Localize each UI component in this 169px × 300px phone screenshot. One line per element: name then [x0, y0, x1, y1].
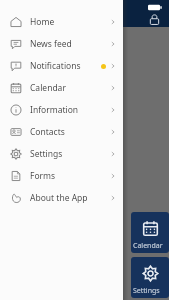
button[interactable]: Lock: [148, 13, 161, 26]
button[interactable]: Settings: [0, 143, 123, 165]
staticText: Settings: [30, 148, 63, 160]
staticText: Contacts: [30, 126, 65, 138]
staticText: About the App: [30, 192, 88, 204]
button[interactable]: Home: [0, 11, 123, 33]
button[interactable]: News feed: [0, 33, 123, 55]
button[interactable]: Calendar: [0, 77, 123, 99]
staticText: Home: [30, 16, 55, 28]
staticText: Information: [30, 104, 79, 116]
button[interactable]: Notifications: [0, 55, 123, 77]
button[interactable]: Forms: [0, 165, 123, 187]
staticText: Calendar: [133, 241, 163, 251]
staticText: Calendar: [30, 82, 66, 94]
button[interactable]: About the App: [0, 187, 123, 209]
staticText: News feed: [30, 38, 72, 50]
button[interactable]: Information: [0, 99, 123, 121]
button[interactable]: Calendar: [131, 212, 169, 253]
staticText: Forms: [30, 170, 56, 182]
button[interactable]: Settings: [131, 257, 169, 298]
staticText: Settings: [133, 286, 160, 296]
button[interactable]: Contacts: [0, 121, 123, 143]
staticText: Notifications: [30, 60, 81, 72]
